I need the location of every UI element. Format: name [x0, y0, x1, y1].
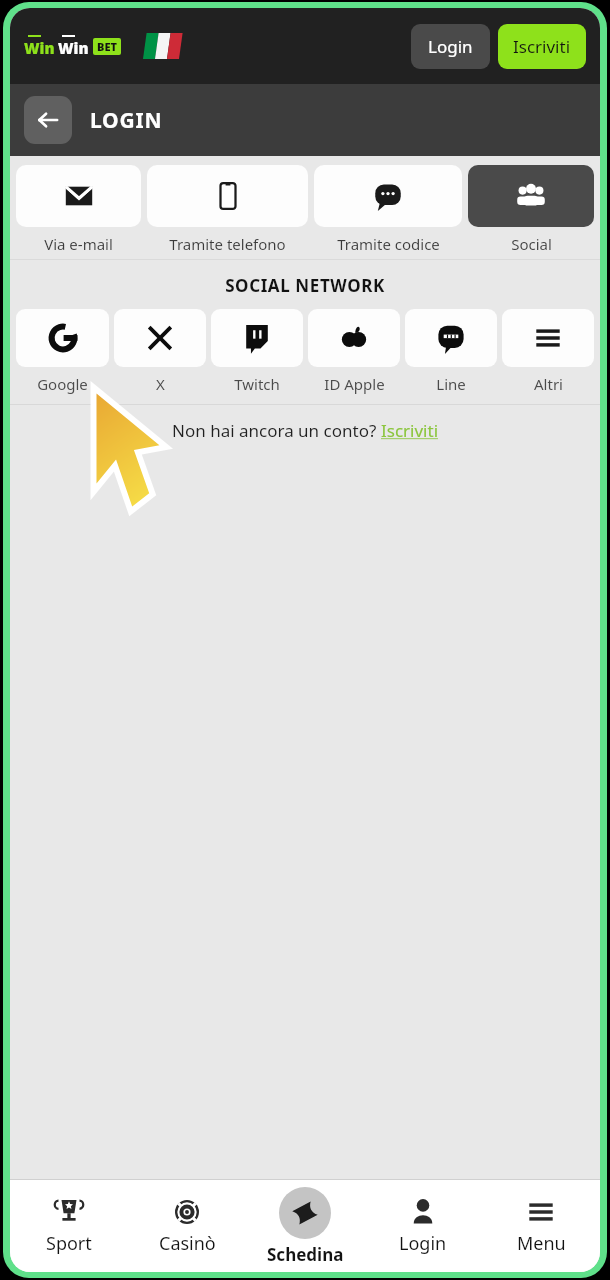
button[interactable]: X [114, 309, 206, 394]
button[interactable]: Tramite codice [314, 165, 462, 254]
staticText: Login [399, 1231, 447, 1256]
button[interactable]: Login [411, 24, 490, 69]
button[interactable]: Twitch [211, 309, 303, 394]
button[interactable]: Via e-mail [16, 165, 141, 254]
staticText: Non hai ancora un conto? [172, 419, 381, 442]
button[interactable]: Altri [502, 309, 594, 394]
staticText: Win [24, 38, 55, 58]
staticText: Line [436, 374, 466, 394]
staticText: ID Apple [324, 374, 385, 394]
staticText: Schedina [267, 1243, 344, 1266]
staticText: Login [428, 35, 473, 58]
staticText: SOCIAL NETWORK [10, 274, 600, 297]
staticText: X [156, 374, 165, 394]
staticText: Google [37, 374, 88, 394]
button[interactable]: Menu [482, 1180, 600, 1272]
staticText: Tramite telefono [169, 234, 286, 254]
button[interactable]: Casinò [128, 1180, 246, 1272]
staticText: Via e-mail [44, 234, 113, 254]
button[interactable]: Login [364, 1180, 482, 1272]
staticText: Casinò [159, 1231, 216, 1256]
button[interactable]: Social [468, 165, 594, 254]
button[interactable]: Google [16, 309, 109, 394]
staticText: Social [511, 234, 552, 254]
staticText: Win [58, 38, 89, 58]
staticText: Sport [46, 1231, 92, 1256]
button[interactable]: Back [24, 96, 72, 144]
button[interactable]: Schedina [246, 1180, 364, 1272]
staticText: Menu [517, 1231, 566, 1256]
staticText: LOGIN [90, 106, 163, 135]
staticText: Tramite codice [337, 234, 440, 254]
button[interactable]: Line [405, 309, 497, 394]
button[interactable]: ID Apple [308, 309, 400, 394]
staticText: Iscriviti [381, 419, 439, 442]
staticText: Altri [534, 374, 563, 394]
button[interactable]: Sport [10, 1180, 128, 1272]
staticText: Twitch [234, 374, 280, 394]
staticText: BET [97, 39, 117, 54]
button[interactable]: Iscriviti [381, 419, 439, 442]
staticText: Iscriviti [513, 35, 571, 58]
button[interactable]: Tramite telefono [147, 165, 308, 254]
button[interactable]: Iscriviti [498, 24, 586, 69]
